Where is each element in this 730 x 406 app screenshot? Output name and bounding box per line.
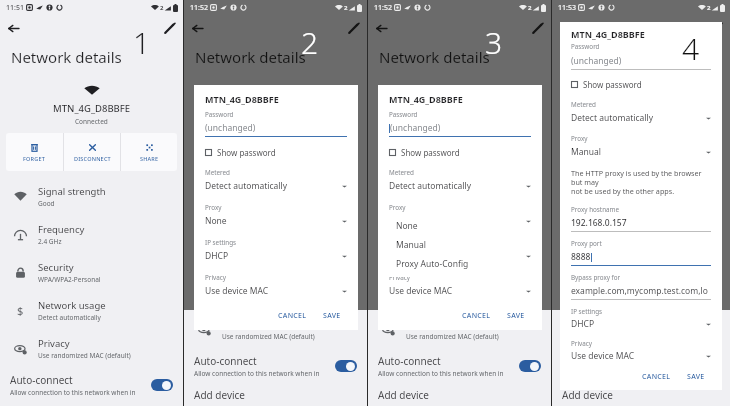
staticText: DHCP: [389, 250, 526, 262]
button[interactable]: Use device MAC: [378, 285, 542, 297]
button[interactable]: Detect automatically: [560, 112, 722, 124]
button[interactable]: Proxy Auto-Config: [384, 254, 511, 273]
button[interactable]: DHCP: [194, 250, 358, 262]
button[interactable]: Detect automatically: [194, 180, 358, 192]
staticText: 11:51: [6, 3, 24, 13]
staticText: Show password: [217, 147, 276, 158]
button[interactable]: Privacy: [368, 310, 551, 348]
staticText: 192.168.0.157: [571, 217, 627, 229]
staticText: Network details: [379, 47, 490, 67]
staticText: Auto-connect: [194, 354, 257, 368]
staticText: Use device MAC: [389, 285, 526, 297]
button[interactable]: Manual: [560, 146, 722, 158]
button[interactable]: CANCEL: [273, 308, 312, 324]
button[interactable]: SAVE: [318, 308, 346, 324]
staticText: IP settings: [571, 307, 603, 316]
button[interactable]: CANCEL: [457, 308, 496, 324]
button[interactable]: Show password: [378, 147, 460, 158]
staticText: Privacy: [205, 273, 227, 282]
staticText: Allow connection to this network when in…: [562, 369, 698, 378]
staticText: Detect automatically: [389, 180, 526, 192]
staticText: None: [389, 215, 526, 227]
staticText: CANCEL: [642, 372, 671, 382]
staticText: 2.4 GHz: [38, 237, 62, 246]
staticText: Connected: [75, 117, 108, 126]
button[interactable]: DISCONNECT: [64, 133, 120, 171]
button[interactable]: Use device MAC: [194, 285, 358, 297]
staticText: CANCEL: [462, 311, 491, 321]
staticText: 2: [707, 4, 711, 12]
staticText: Show password: [401, 147, 460, 158]
button[interactable]: Detect automatically: [378, 180, 542, 192]
staticText: Detect automatically: [205, 180, 342, 192]
staticText: 11:52: [190, 3, 208, 13]
staticText: Use randomized MAC (default): [38, 351, 131, 360]
staticText: 4: [682, 28, 700, 69]
staticText: Privacy: [222, 318, 254, 331]
button[interactable]: SHARE: [121, 133, 177, 171]
staticText: Show password: [583, 79, 642, 90]
staticText: Metered: [205, 168, 230, 177]
button[interactable]: Frequency: [0, 215, 183, 253]
button[interactable]: SAVE: [502, 308, 530, 324]
staticText: Manual: [396, 239, 426, 251]
button[interactable]: None: [384, 216, 511, 235]
staticText: Auto-connect: [378, 354, 441, 368]
button[interactable]: FORGET: [6, 133, 63, 171]
button[interactable]: Edit: [163, 22, 176, 35]
button[interactable]: DHCP: [560, 318, 722, 330]
staticText: Good: [38, 199, 55, 208]
button[interactable]: Security: [0, 253, 183, 291]
button[interactable]: Privacy: [552, 310, 730, 348]
staticText: 2: [344, 4, 348, 12]
staticText: SAVE: [687, 372, 705, 382]
staticText: DHCP: [571, 318, 706, 330]
staticText: Privacy: [406, 318, 438, 331]
staticText: Security: [38, 261, 74, 274]
staticText: Proxy port: [571, 239, 602, 248]
button[interactable]: Use device MAC: [560, 350, 722, 362]
staticText: Proxy hostname: [571, 205, 620, 214]
staticText: Privacy: [571, 339, 593, 348]
staticText: Manual: [571, 146, 706, 158]
staticText: The HTTP proxy is used by the browser bu…: [571, 168, 711, 197]
staticText: Detect automatically: [571, 112, 706, 124]
button[interactable]: Show password: [560, 79, 642, 90]
button[interactable]: Signal strength: [0, 177, 183, 215]
button[interactable]: Manual: [384, 235, 511, 254]
button[interactable]: DHCP: [378, 250, 542, 262]
staticText: Metered: [389, 168, 414, 177]
staticText: Password: [571, 42, 600, 51]
button[interactable]: None: [378, 215, 542, 227]
staticText: Detect automatically: [38, 313, 101, 322]
staticText: SAVE: [507, 311, 525, 321]
staticText: 2: [301, 22, 319, 63]
staticText: Password: [205, 110, 234, 119]
button[interactable]: Back: [7, 22, 20, 35]
staticText: Frequency: [38, 223, 85, 236]
staticText: Privacy: [38, 337, 70, 350]
button[interactable]: Auto-connect: [0, 367, 183, 403]
staticText: 2: [528, 4, 532, 12]
staticText: Privacy: [389, 273, 411, 282]
staticText: FORGET: [23, 155, 46, 162]
staticText: 8888: [571, 251, 591, 263]
button[interactable]: SAVE: [682, 369, 710, 385]
staticText: MTN_4G_D8BBFE: [389, 93, 463, 105]
staticText: None: [205, 215, 342, 227]
button[interactable]: Privacy: [184, 310, 367, 348]
button[interactable]: Privacy: [0, 329, 183, 367]
staticText: Proxy: [205, 203, 222, 212]
staticText: 11:53: [558, 3, 576, 13]
staticText: Network usage: [38, 299, 106, 312]
staticText: Bypass proxy for: [571, 273, 621, 282]
button[interactable]: None: [194, 215, 358, 227]
staticText: CANCEL: [278, 311, 307, 321]
staticText: IP settings: [389, 238, 421, 247]
button[interactable]: $: [0, 291, 183, 329]
staticText: Metered: [571, 100, 596, 109]
button[interactable]: CANCEL: [637, 369, 676, 385]
staticText: Add device: [562, 388, 613, 402]
button[interactable]: Show password: [194, 147, 276, 158]
